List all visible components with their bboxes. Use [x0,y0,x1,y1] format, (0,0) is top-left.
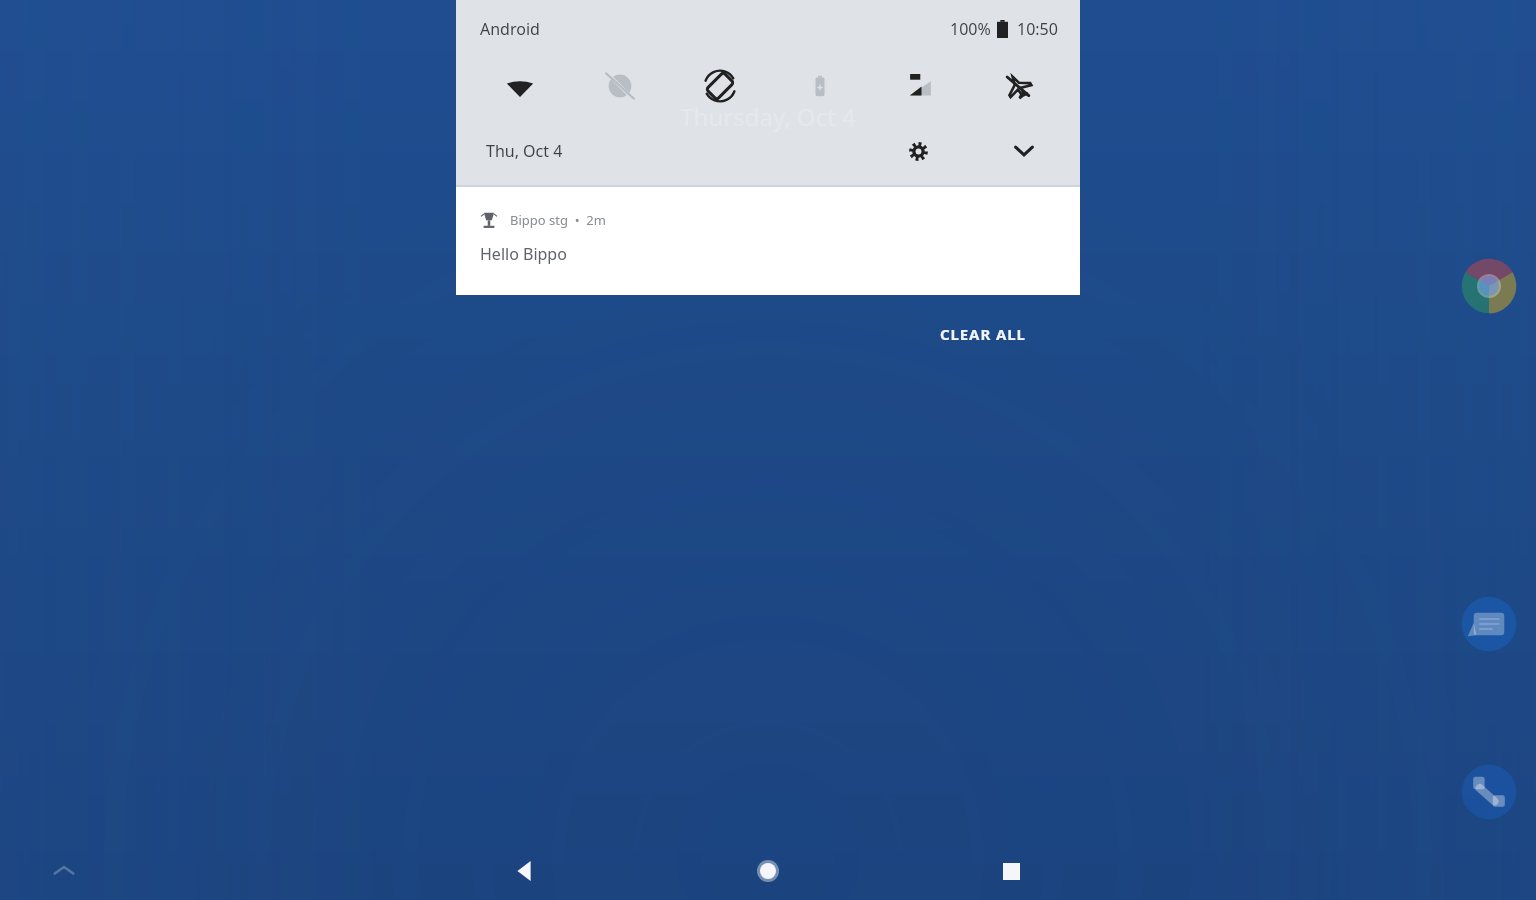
button[interactable]: Mobile data LTE [870,60,970,112]
button[interactable]: Home [735,838,801,900]
button[interactable]: Bluetooth off [570,60,670,112]
button[interactable]: Wi-Fi [470,60,570,112]
staticText: Android [480,18,540,40]
staticText: CLEAR ALL [940,324,1026,344]
button[interactable]: Settings [896,129,940,173]
button[interactable]: Phone [1455,758,1523,826]
staticText: Hello Bippo [480,243,567,265]
staticText: Thursday, Oct 4 [456,100,1080,133]
button[interactable]: Back [492,838,558,900]
button[interactable]: Bippo stg • 2m [456,187,1080,295]
button[interactable]: Chrome [1455,252,1523,320]
staticText: 10:50 [1017,18,1058,40]
staticText: Thu, Oct 4 [486,140,563,162]
staticText: Bippo stg • 2m [510,211,606,229]
button[interactable]: Auto rotate [670,60,770,112]
button[interactable]: Open app drawer [42,848,86,892]
button[interactable]: Messages [1455,590,1523,658]
staticText: 100% [950,18,991,40]
button[interactable]: Expand quick settings [1002,129,1046,173]
button[interactable]: Airplane mode off [970,60,1066,112]
button[interactable]: Recent apps [978,838,1044,900]
button[interactable]: Battery saver [770,60,870,112]
button[interactable]: CLEAR ALL [918,314,1048,354]
